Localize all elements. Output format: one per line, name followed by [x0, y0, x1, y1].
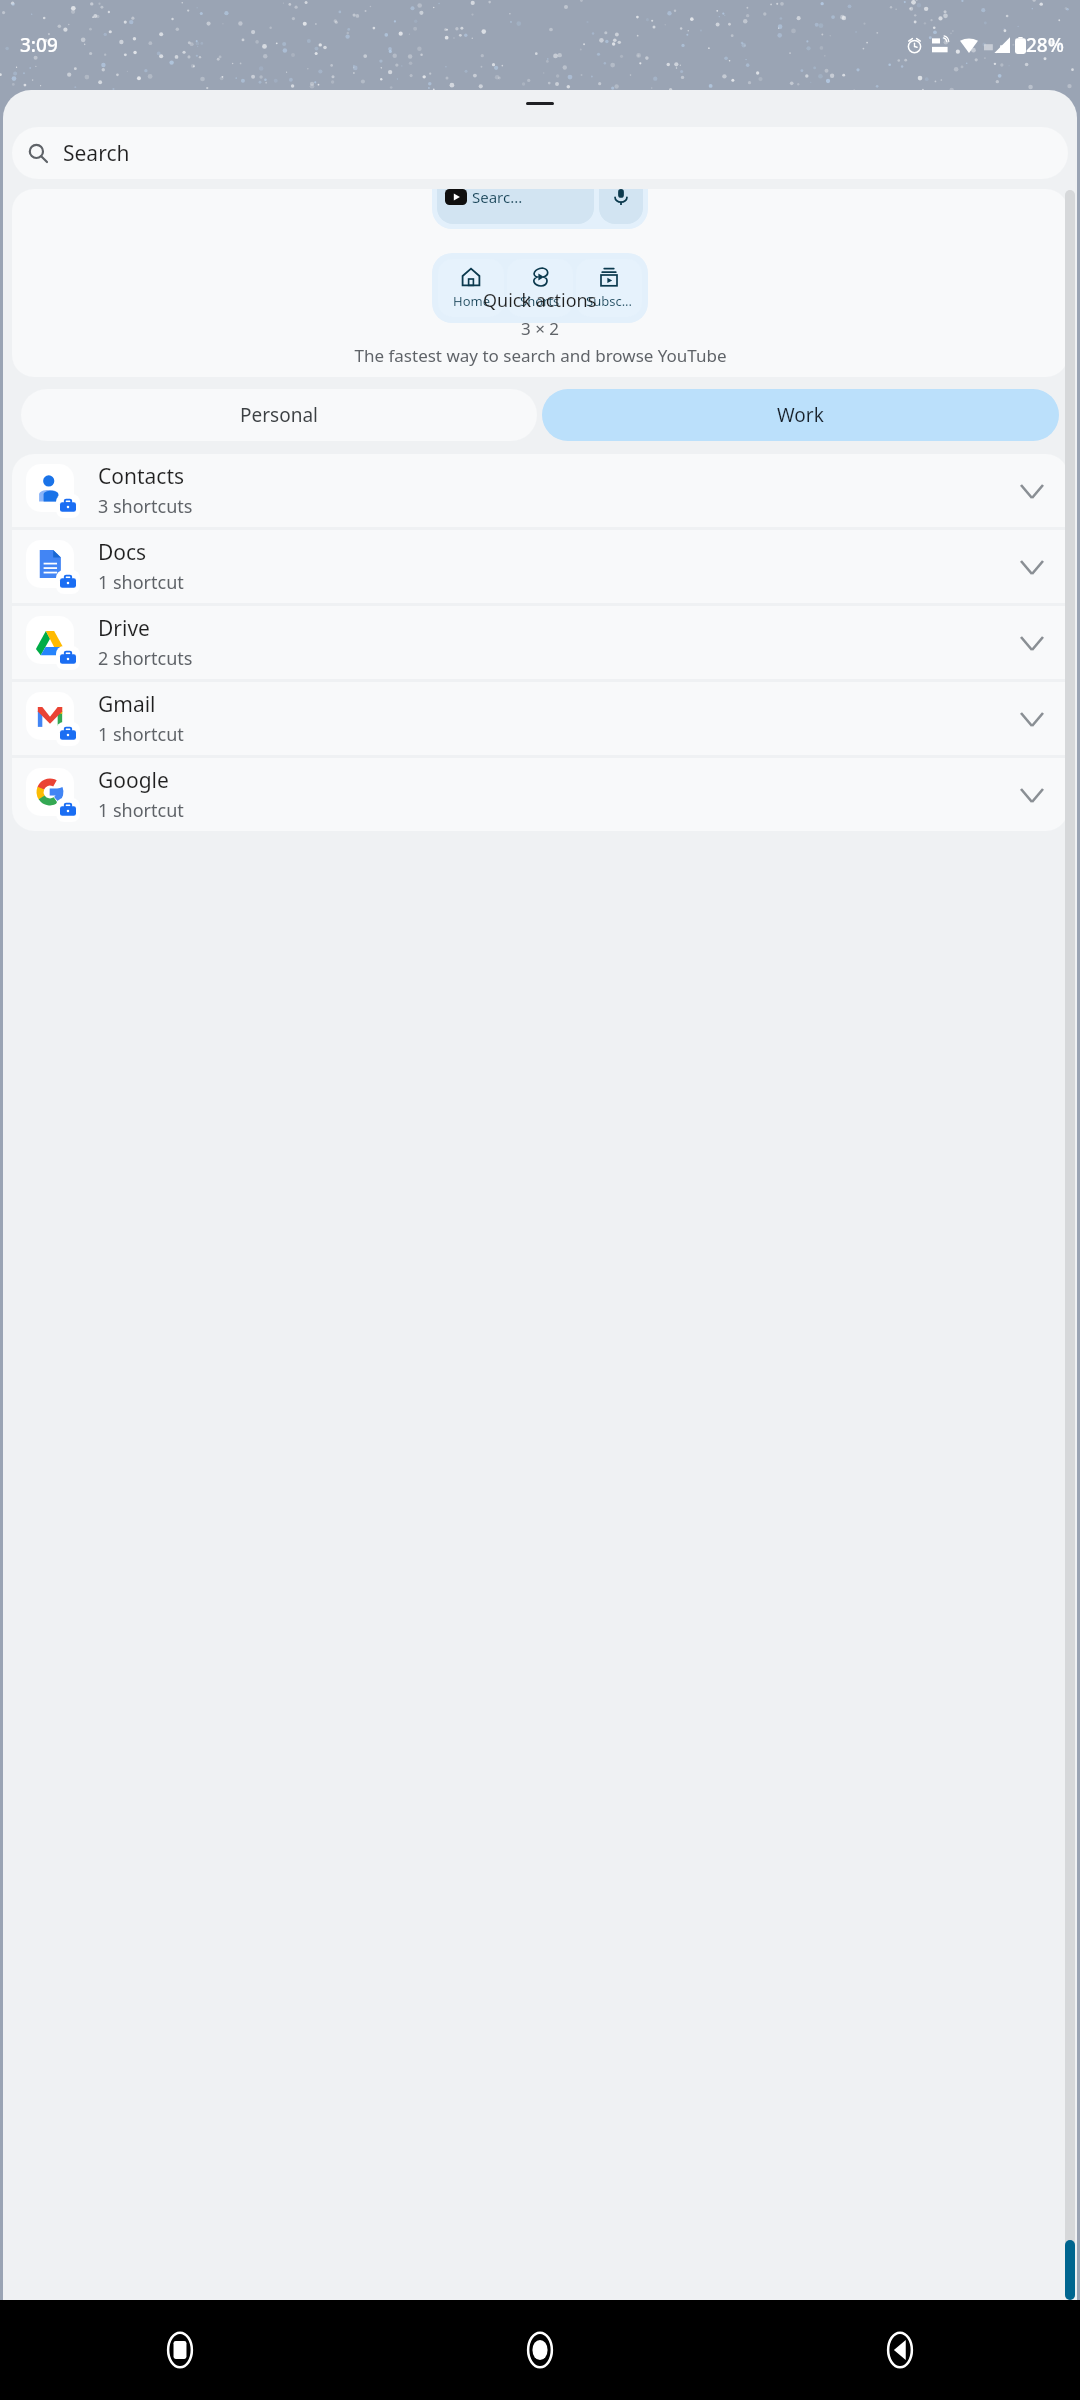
- staticText: Docs: [98, 538, 147, 567]
- button[interactable]: Expand Contacts: [1010, 469, 1054, 513]
- staticText: Gmail: [98, 690, 156, 719]
- staticText: Home: [453, 292, 490, 310]
- button[interactable]: Searc...: [12, 189, 1068, 377]
- staticText: 1 shortcut: [98, 570, 184, 595]
- staticText: Subsc...: [586, 292, 633, 310]
- button[interactable]: Expand Drive: [1010, 621, 1054, 665]
- button[interactable]: Personal: [21, 389, 537, 441]
- staticText: 28%: [1026, 32, 1064, 58]
- staticText: Personal: [240, 402, 318, 428]
- button[interactable]: Subsc...: [576, 259, 642, 317]
- staticText: Quick actions: [483, 288, 597, 313]
- staticText: 1 shortcut: [98, 798, 184, 823]
- staticText: 3:09: [20, 32, 58, 58]
- button[interactable]: Home: [360, 2300, 720, 2400]
- button[interactable]: Home: [438, 259, 504, 317]
- staticText: 3 × 2: [521, 317, 560, 340]
- button[interactable]: Back: [720, 2300, 1080, 2400]
- button[interactable]: Work: [542, 389, 1059, 441]
- staticText: Contacts: [98, 462, 185, 491]
- button[interactable]: Google: [12, 758, 1068, 831]
- button[interactable]: Search: [12, 127, 1068, 179]
- staticText: 1 shortcut: [98, 722, 184, 747]
- staticText: Shorts: [520, 292, 560, 310]
- button[interactable]: Expand Gmail: [1010, 697, 1054, 741]
- button[interactable]: Shorts: [507, 259, 573, 317]
- staticText: Drive: [98, 614, 150, 643]
- staticText: Searc...: [472, 189, 523, 207]
- staticText: The fastest way to search and browse You…: [354, 344, 727, 367]
- button[interactable]: Docs: [12, 530, 1068, 603]
- button[interactable]: Gmail: [12, 682, 1068, 755]
- button[interactable]: Expand Docs: [1010, 545, 1054, 589]
- staticText: Work: [777, 402, 824, 428]
- staticText: Search: [63, 139, 130, 168]
- staticText: 2 shortcuts: [98, 646, 193, 671]
- staticText: 3 shortcuts: [98, 494, 193, 519]
- button[interactable]: Expand Google: [1010, 773, 1054, 817]
- button[interactable]: Contacts: [12, 454, 1068, 527]
- button[interactable]: Recents: [0, 2300, 360, 2400]
- button[interactable]: Drive: [12, 606, 1068, 679]
- staticText: Google: [98, 766, 169, 795]
